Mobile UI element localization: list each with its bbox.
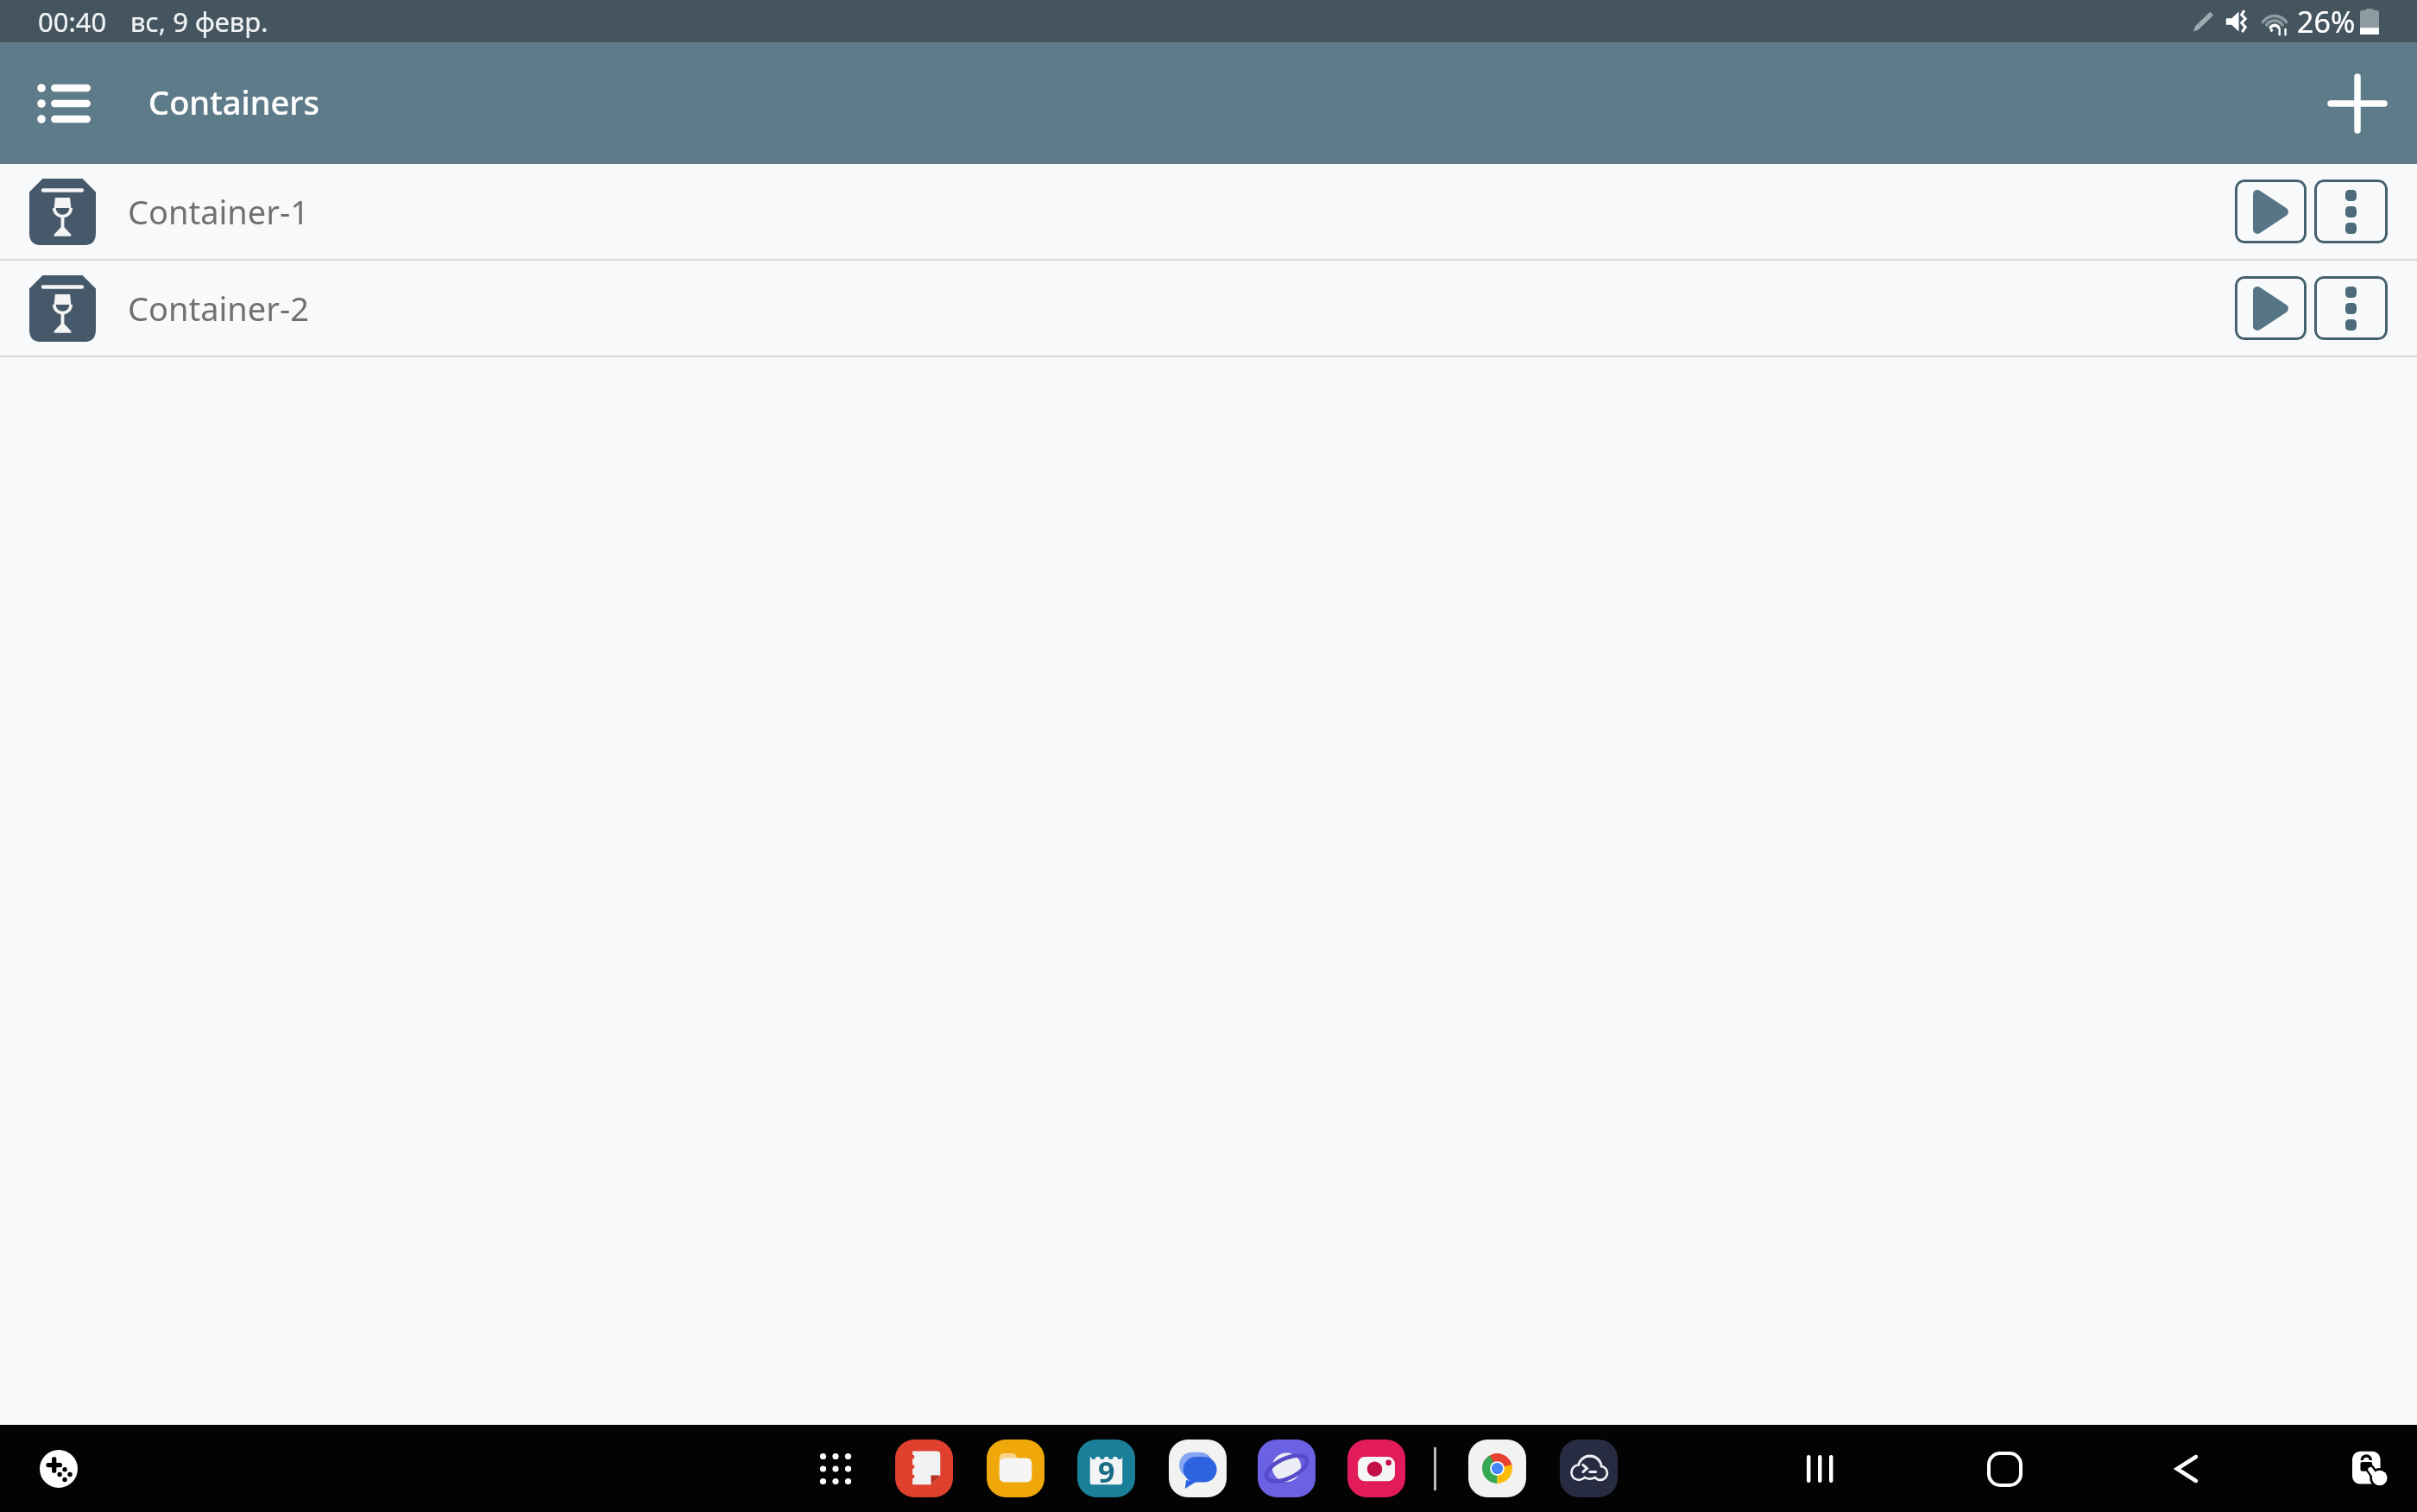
button[interactable] — [2235, 276, 2307, 340]
button[interactable] — [895, 1440, 953, 1497]
button[interactable] — [2161, 1443, 2212, 1495]
button[interactable] — [817, 1450, 855, 1488]
button[interactable] — [1258, 1440, 1316, 1497]
button[interactable]: Container-1 — [0, 164, 2417, 259]
button[interactable]: Container-2 — [0, 261, 2417, 356]
staticText: Container-2 — [128, 286, 309, 331]
button[interactable] — [1169, 1440, 1227, 1497]
staticText: 9 — [1098, 1452, 1115, 1491]
staticText: вс, 9 февр. — [130, 3, 268, 40]
staticText: 26% — [2297, 2, 2356, 41]
button[interactable] — [2314, 276, 2388, 340]
button[interactable] — [1347, 1440, 1405, 1497]
button[interactable] — [2352, 1450, 2390, 1488]
button[interactable] — [1560, 1440, 1618, 1497]
button[interactable] — [987, 1440, 1044, 1497]
staticText: Container-1 — [128, 189, 309, 234]
button[interactable] — [2322, 68, 2393, 139]
staticText: 00:40 — [38, 3, 107, 40]
button[interactable] — [2235, 180, 2307, 243]
button[interactable] — [1468, 1440, 1526, 1497]
staticText: Containers — [148, 79, 319, 124]
button[interactable] — [31, 68, 102, 139]
button[interactable] — [1978, 1443, 2030, 1495]
button[interactable]: 9 — [1077, 1440, 1135, 1497]
button[interactable] — [2314, 180, 2388, 243]
button[interactable] — [40, 1450, 78, 1488]
button[interactable] — [1795, 1443, 1846, 1495]
